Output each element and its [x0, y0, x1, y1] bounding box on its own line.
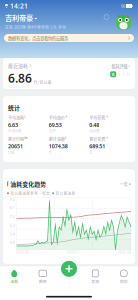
- staticText: 2024-06: [16, 251, 29, 254]
- staticText: 费用: [39, 278, 47, 284]
- staticText: ￥: [106, 136, 109, 139]
- staticText: L: [24, 115, 25, 118]
- staticText: 元: [89, 150, 92, 155]
- staticText: L: [65, 136, 66, 140]
- staticText: ￥: [106, 115, 109, 118]
- staticText: 百公里油耗: [55, 191, 75, 196]
- staticText: 元/升: [49, 128, 56, 133]
- button[interactable]: 一年: [120, 181, 131, 187]
- staticText: 平均油耗: [8, 115, 24, 121]
- staticText: 升: [49, 150, 52, 155]
- staticText: 公里: [8, 150, 14, 155]
- staticText: km: [24, 136, 27, 140]
- staticText: 2025-04: [118, 251, 131, 254]
- staticText: 20651: [8, 143, 23, 150]
- staticText: 8.1: [10, 206, 15, 210]
- staticText: 9.0: [10, 198, 15, 201]
- staticText: ￥: [65, 115, 68, 118]
- staticText: 我的: [120, 278, 128, 284]
- staticText: 2024-11: [67, 251, 80, 254]
- staticText: 最近油耗: [8, 62, 28, 69]
- staticText: 油耗: [10, 278, 18, 284]
- staticText: D: [127, 72, 130, 77]
- staticText: 69.53: [49, 121, 62, 128]
- staticText: 平均油价: [49, 115, 65, 121]
- button[interactable]: 最近油耗: [8, 62, 31, 69]
- button[interactable]: 能耗评级: [111, 63, 130, 69]
- button[interactable]: 我的: [109, 266, 138, 287]
- staticText: 百公里油耗参考·综合: [10, 191, 50, 196]
- staticText: 统计: [8, 103, 20, 112]
- staticText: 0.48: [89, 121, 99, 128]
- staticText: 吉利帝豪: [5, 12, 33, 23]
- staticText: S: [107, 72, 109, 77]
- staticText: 5.4: [10, 232, 15, 236]
- staticText: 4.5: [10, 241, 15, 245]
- staticText: C: [122, 72, 125, 77]
- button[interactable]: 吉利帝豪: [5, 12, 37, 23]
- staticText: 发现: [91, 278, 99, 284]
- button[interactable]: 新增记录: [61, 261, 77, 277]
- staticText: 一年: [120, 181, 128, 187]
- staticText: 升/百公里: [33, 79, 51, 85]
- button[interactable]: 数据有变化，点击查看你的云服务: [4, 34, 134, 42]
- staticText: 元/公里: [89, 128, 99, 133]
- staticText: 50: [121, 3, 125, 9]
- staticText: 689.51: [89, 143, 105, 150]
- staticText: 升/百公里: [8, 128, 21, 133]
- button[interactable]: 油耗: [0, 266, 28, 287]
- staticText: 数据有变化，点击查看你的云服务: [8, 35, 68, 41]
- button[interactable]: 发现: [81, 266, 109, 287]
- staticText: B: [118, 72, 121, 77]
- staticText: 能耗评级: [111, 63, 127, 69]
- staticText: 6.3: [10, 224, 15, 227]
- staticText: 累计花费: [89, 136, 105, 142]
- staticText: 油耗变化趋势: [10, 180, 46, 188]
- button[interactable]: 费用: [28, 266, 57, 287]
- staticText: A: [112, 72, 115, 77]
- staticText: 车型 2023款 第4代尊贵版 1.5L 手动: [5, 24, 66, 29]
- staticText: 7.2: [10, 215, 15, 219]
- staticText: 6.86: [8, 70, 32, 86]
- staticText: 1074.38: [49, 143, 68, 150]
- staticText: 14:21: [8, 2, 28, 10]
- staticText: 平均花费: [89, 115, 105, 121]
- staticText: 6.63: [8, 121, 18, 128]
- staticText: 累计行程: [8, 136, 24, 142]
- staticText: 累计油量: [49, 136, 65, 142]
